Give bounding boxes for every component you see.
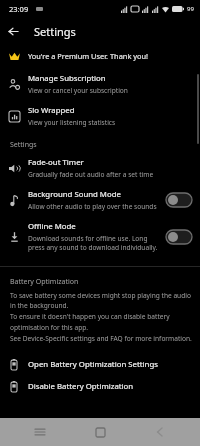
staticText: Battery Optimization: [10, 277, 79, 287]
staticText: View or cancel your subscription: [28, 86, 128, 95]
button[interactable]: Back: [0, 18, 26, 44]
staticText: To save battery some devices might stop …: [10, 291, 192, 343]
staticText: You're a Premium User. Thank you!: [28, 51, 149, 61]
button[interactable]: Toggle Offline Mode: [166, 230, 192, 244]
button[interactable]: Home: [80, 418, 120, 446]
staticText: 23:09: [9, 4, 29, 14]
staticText: Download sounds for offline use. Long pr…: [28, 234, 160, 252]
button[interactable]: Open Battery Optimization Settings: [0, 353, 200, 375]
button[interactable]: Recents: [20, 418, 60, 446]
button[interactable]: Offline Mode: [0, 216, 200, 257]
staticText: Settings: [34, 24, 76, 39]
staticText: Slo Wrapped: [28, 105, 75, 116]
staticText: 99: [187, 5, 194, 13]
staticText: Open Battery Optimization Settings: [28, 359, 158, 370]
staticText: Allow other audio to play over the sound…: [28, 202, 157, 211]
staticText: Offline Mode: [28, 221, 76, 232]
staticText: Background Sound Mode: [28, 189, 121, 200]
button[interactable]: Disable Battery Optimization: [0, 375, 200, 397]
button[interactable]: Fade-out Timer: [0, 152, 200, 184]
staticText: Fade-out Timer: [28, 157, 84, 168]
button[interactable]: You're a Premium User. Thank you!: [0, 44, 200, 68]
button[interactable]: Slo Wrapped: [0, 100, 200, 132]
button[interactable]: Background Sound Mode: [0, 184, 200, 216]
button[interactable]: Toggle Background Sound Mode: [166, 193, 192, 207]
staticText: Settings: [10, 140, 37, 150]
button[interactable]: Manage Subscription: [0, 68, 200, 100]
staticText: View your listening statistics: [28, 118, 116, 127]
staticText: Gradually fade out audio after a set tim…: [28, 170, 154, 179]
staticText: Manage Subscription: [28, 73, 106, 84]
staticText: Disable Battery Optimization: [28, 381, 134, 392]
